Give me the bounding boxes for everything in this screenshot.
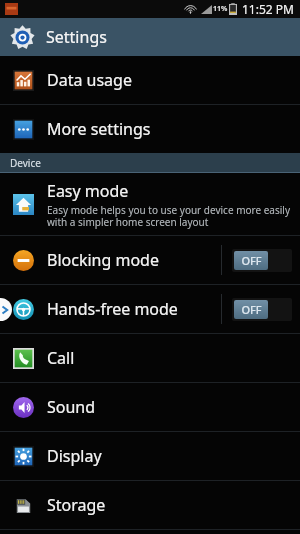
staticText: Storage — [47, 494, 106, 516]
staticText: OFF — [241, 302, 262, 317]
button[interactable]: Settings — [0, 18, 300, 56]
staticText: Display — [47, 445, 102, 467]
staticText: Hands-free mode — [47, 298, 178, 320]
staticText: Call — [47, 347, 75, 369]
staticText: 11% — [213, 4, 228, 14]
button[interactable]: Storage — [0, 481, 300, 529]
button[interactable]: Easy mode — [0, 173, 300, 235]
button[interactable]: Toggle, off — [232, 249, 292, 272]
button[interactable]: Call — [0, 334, 300, 382]
button[interactable]: Hands-free mode — [0, 285, 300, 333]
button[interactable]: Toggle, off — [232, 298, 292, 321]
button[interactable]: More settings — [0, 105, 300, 153]
button[interactable]: Open side panel — [0, 298, 12, 321]
staticText: More settings — [47, 118, 151, 140]
staticText: Sound — [47, 396, 96, 418]
staticText: 11:52 PM — [242, 1, 294, 17]
staticText: Blocking mode — [47, 249, 159, 271]
staticText: OFF — [241, 253, 262, 268]
staticText: Data usage — [47, 69, 132, 91]
staticText: Settings — [46, 26, 107, 48]
staticText: Easy mode — [47, 180, 129, 202]
button[interactable]: Data usage — [0, 56, 300, 104]
staticText: Easy mode helps you to use your device m… — [47, 203, 300, 229]
staticText: Device — [10, 156, 41, 170]
button[interactable]: Blocking mode — [0, 236, 300, 284]
button[interactable]: Display — [0, 432, 300, 480]
button[interactable]: Sound — [0, 383, 300, 431]
